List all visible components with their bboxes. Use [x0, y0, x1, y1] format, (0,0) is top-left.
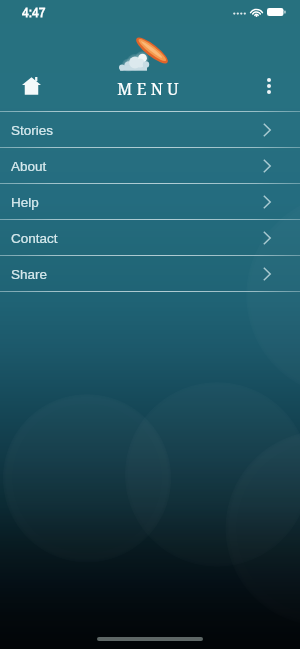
staticText: Help	[11, 195, 39, 210]
button[interactable]: Stories	[0, 112, 300, 147]
staticText: Contact	[11, 231, 58, 246]
button[interactable]: Share	[0, 256, 300, 291]
button[interactable]: More options	[249, 66, 289, 106]
staticText: Stories	[11, 123, 54, 138]
staticText: MENU	[117, 78, 183, 100]
staticText: 4:47	[22, 6, 46, 19]
button[interactable]: Help	[0, 184, 300, 219]
staticText: Share	[11, 267, 48, 282]
button[interactable]: Home	[11, 66, 51, 106]
button[interactable]: Contact	[0, 220, 300, 255]
button[interactable]: About	[0, 148, 300, 183]
staticText: About	[11, 159, 47, 174]
